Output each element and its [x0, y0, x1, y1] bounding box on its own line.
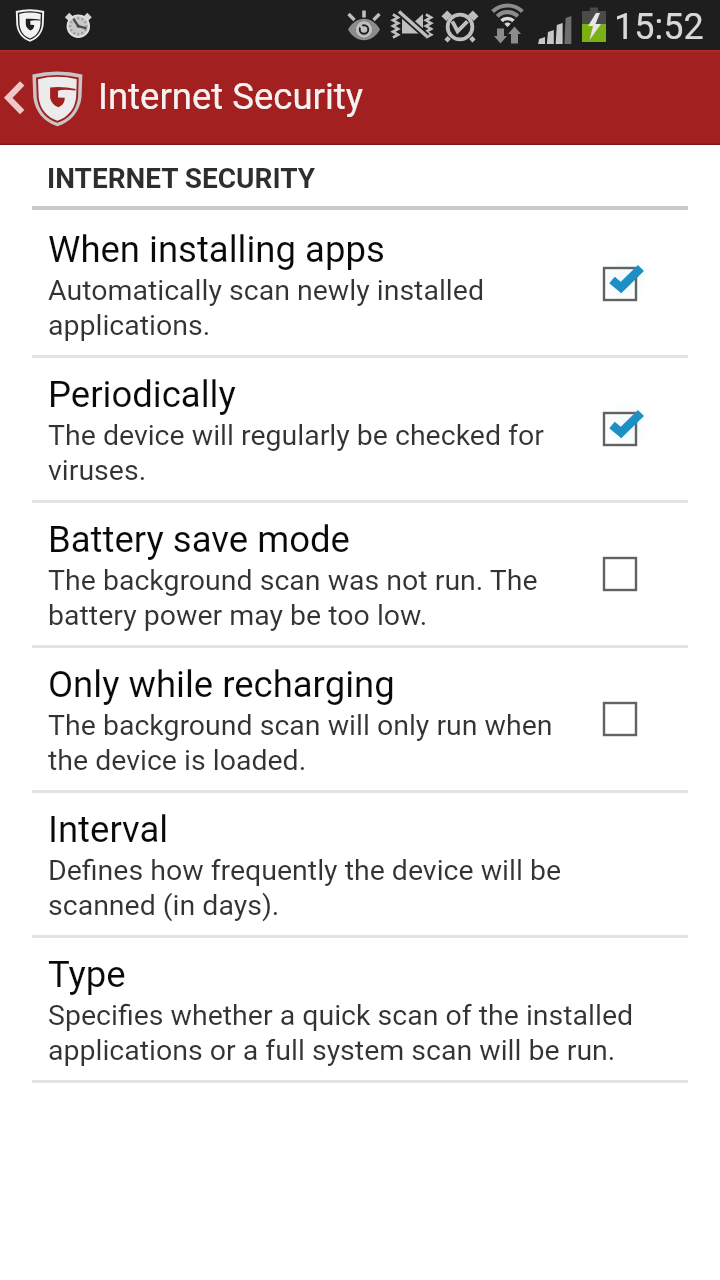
- staticText: Only while recharging: [48, 663, 395, 706]
- staticText: Battery save mode: [48, 518, 350, 561]
- staticText: The background scan will only run when t…: [48, 709, 578, 777]
- staticText: Defines how frequently the device will b…: [48, 854, 658, 922]
- button[interactable]: Battery save mode: [594, 544, 658, 608]
- staticText: Periodically: [48, 373, 236, 416]
- staticText: The background scan was not run. The bat…: [48, 564, 578, 632]
- staticText: INTERNET SECURITY: [47, 162, 316, 195]
- staticText: The device will regularly be checked for…: [48, 419, 578, 487]
- button[interactable]: Interval: [0, 793, 720, 938]
- staticText: Type: [48, 953, 126, 996]
- button[interactable]: When installing apps: [0, 213, 720, 358]
- staticText: Specifies whether a quick scan of the in…: [48, 999, 658, 1067]
- staticText: 15:52: [614, 6, 704, 48]
- staticText: Interval: [48, 808, 169, 851]
- staticText: When installing apps: [48, 228, 385, 271]
- staticText: Internet Security: [98, 75, 363, 118]
- button[interactable]: Type: [0, 938, 720, 1083]
- staticText: Automatically scan newly installed appli…: [48, 274, 578, 342]
- button[interactable]: Only while recharging: [594, 689, 658, 753]
- button[interactable]: Battery save mode: [0, 503, 720, 648]
- button[interactable]: Periodically: [594, 399, 658, 463]
- button[interactable]: Only while recharging: [0, 648, 720, 793]
- button[interactable]: When installing apps: [594, 254, 658, 318]
- button[interactable]: Periodically: [0, 358, 720, 503]
- button[interactable]: Internet Security: [0, 50, 720, 145]
